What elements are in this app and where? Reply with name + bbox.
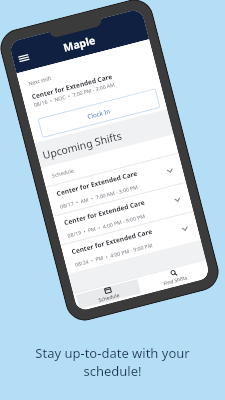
staticText: Clock In <box>86 106 112 120</box>
staticText: Maple <box>62 33 97 55</box>
staticText: Center for Extended Care <box>71 227 153 256</box>
staticText: Center for Extended Care <box>63 198 146 227</box>
button[interactable]: Clock In <box>37 88 160 138</box>
staticText: Find Shifts <box>163 274 189 287</box>
button[interactable]: Menu <box>17 51 31 65</box>
staticText: Center for Extended Care <box>56 169 138 198</box>
staticText: Next shift <box>27 74 52 87</box>
staticText: Schedule <box>98 292 121 304</box>
staticText: Schedule <box>51 166 75 179</box>
button[interactable]: Center for Extended Care <box>61 211 201 274</box>
button[interactable]: Center for Extended Care <box>46 153 186 216</box>
staticText: 08/16 • NOC • 7:00 PM - 3:00 AM <box>33 80 116 108</box>
button[interactable]: Schedule <box>75 279 141 309</box>
button[interactable]: Find Shifts <box>141 262 208 292</box>
staticText: 08/19 • PM • 4:00 PM - 9:00 PM <box>67 212 146 239</box>
staticText: Center for Extended Care <box>31 72 113 101</box>
staticText: Stay up-to-date with your schedule! <box>35 344 190 380</box>
staticText: 08/24 • PM • 4:00 PM - 9:00 PM <box>74 241 153 268</box>
staticText: 08/17 • AM • 7:00 AM - 3:00 PM <box>59 183 139 210</box>
button[interactable]: Center for Extended Care <box>53 182 193 245</box>
staticText: Upcoming Shifts <box>41 128 124 162</box>
